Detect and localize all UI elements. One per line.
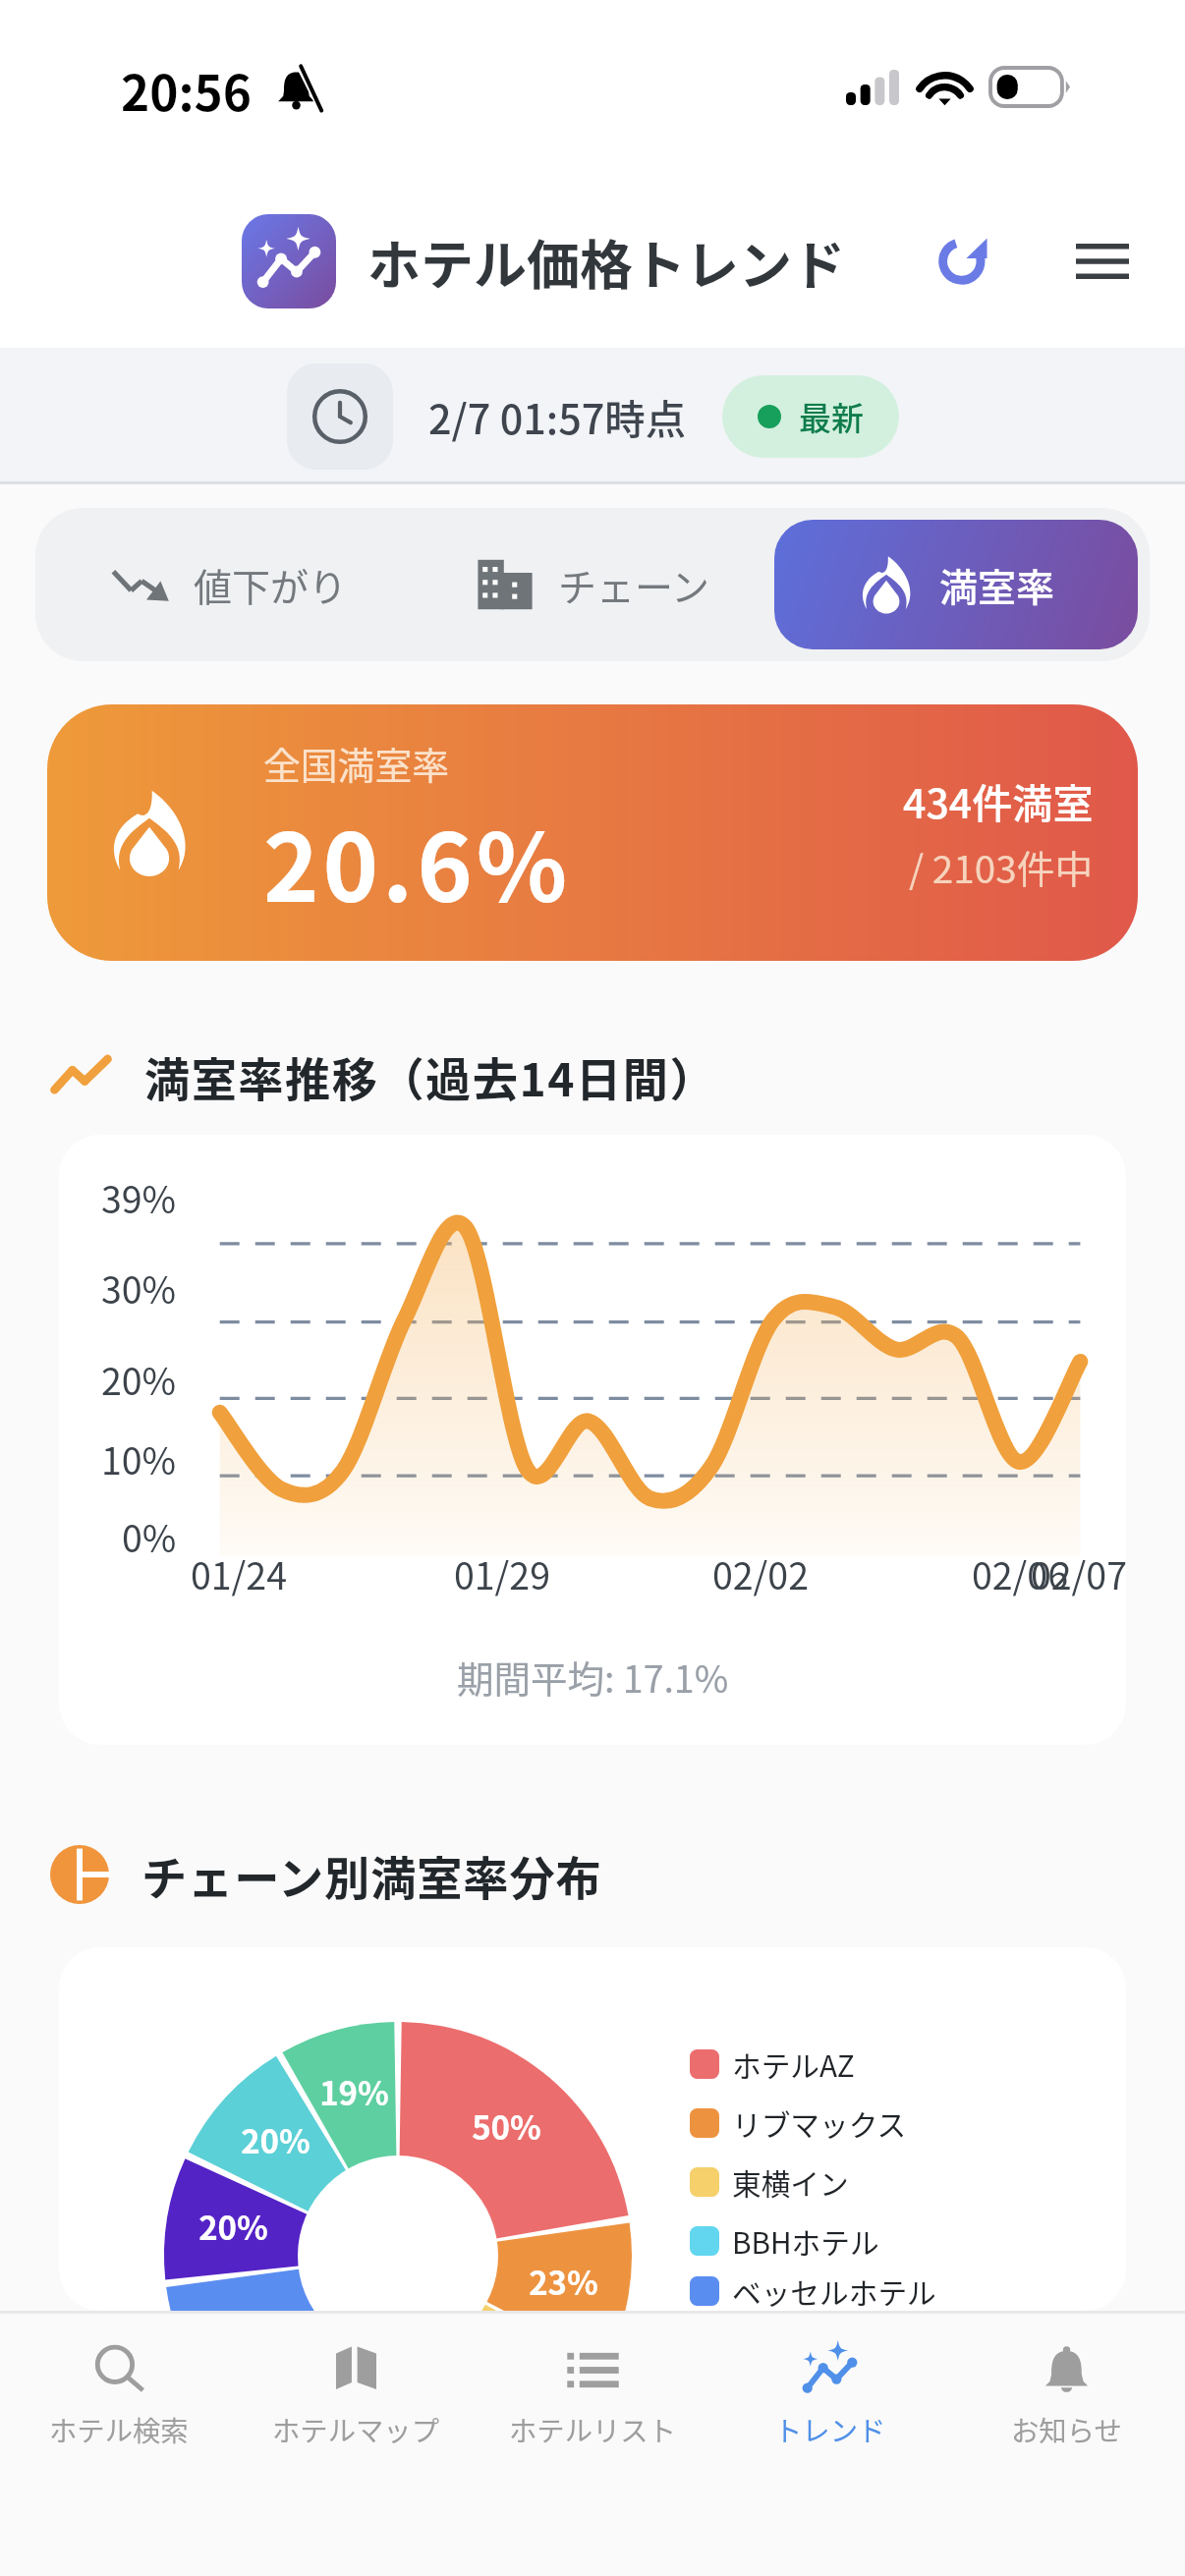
staticText: 20% [198, 2203, 268, 2250]
staticText: 20% [101, 1352, 177, 1405]
button[interactable]: お知らせ [948, 2314, 1185, 2576]
staticText: 20.6% [263, 793, 572, 929]
staticText: 23% [529, 2258, 598, 2305]
staticText: 434件満室 [903, 771, 1094, 830]
staticText: / 2103件中 [909, 839, 1094, 894]
staticText: 02/02 [712, 1546, 809, 1599]
button[interactable]: ホテル検索 [0, 2314, 238, 2576]
staticText: 値下がり [194, 557, 348, 612]
staticText: 満室率 [939, 557, 1055, 612]
staticText: ホテルリスト [509, 2409, 677, 2449]
staticText: 02/06 [972, 1546, 1068, 1599]
staticText: 20:56 [121, 55, 252, 126]
button[interactable]: 満室率 [774, 520, 1138, 649]
staticText: チェーン [558, 557, 710, 612]
staticText: 19% [319, 2068, 389, 2115]
staticText: リブマックス [732, 2102, 907, 2145]
staticText: 39% [101, 1170, 177, 1223]
button[interactable]: トレンド [711, 2314, 948, 2576]
staticText: 20% [241, 2116, 310, 2163]
button[interactable]: Refresh [914, 211, 1014, 311]
button[interactable]: 値下がり [47, 520, 411, 649]
staticText: 10% [101, 1431, 177, 1484]
staticText: 満室率推移（過去14日間） [144, 1043, 717, 1109]
staticText: ホテル検索 [49, 2409, 189, 2449]
staticText: BBHホテル [732, 2220, 879, 2263]
button[interactable]: ホテルリスト [475, 2314, 711, 2576]
staticText: 01/24 [191, 1546, 287, 1599]
staticText: トレンド [774, 2409, 886, 2449]
staticText: 30% [101, 1260, 177, 1314]
staticText: ホテル価格トレンド [367, 223, 845, 300]
staticText: 0% [122, 1509, 177, 1562]
staticText: 期間平均: 17.1% [457, 1650, 729, 1703]
staticText: 最新 [799, 393, 864, 440]
staticText: チェーン別満室率分布 [141, 1842, 602, 1908]
staticText: 東横イン [732, 2161, 849, 2204]
staticText: ホテルマップ [272, 2409, 440, 2449]
button[interactable]: Menu [1052, 211, 1153, 311]
staticText: 全国満室率 [263, 736, 449, 790]
staticText: ホテルAZ [732, 2044, 855, 2086]
button[interactable]: 全国満室率 [47, 704, 1138, 961]
button[interactable]: チェーン [411, 520, 774, 649]
button[interactable]: ホテルマップ [238, 2314, 475, 2576]
staticText: お知らせ [1011, 2409, 1122, 2449]
staticText: 50% [472, 2102, 541, 2150]
staticText: 01/29 [454, 1546, 550, 1599]
staticText: ベッセルホテル [732, 2270, 936, 2311]
staticText: 02/07 [1031, 1546, 1126, 1599]
staticText: 2/7 01:57時点 [428, 387, 687, 446]
